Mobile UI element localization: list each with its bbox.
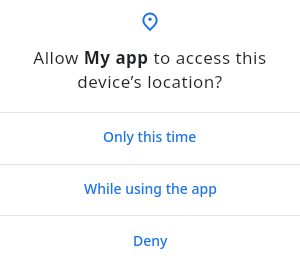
staticText: While using the app — [84, 179, 217, 198]
staticText: Only this time — [103, 127, 197, 146]
button[interactable]: While using the app — [0, 164, 300, 216]
staticText: Deny — [133, 231, 168, 250]
button[interactable]: Only this time — [0, 112, 300, 164]
staticText: Allow My app to access this device’s loc… — [0, 46, 300, 93]
button[interactable]: Deny — [0, 216, 300, 260]
